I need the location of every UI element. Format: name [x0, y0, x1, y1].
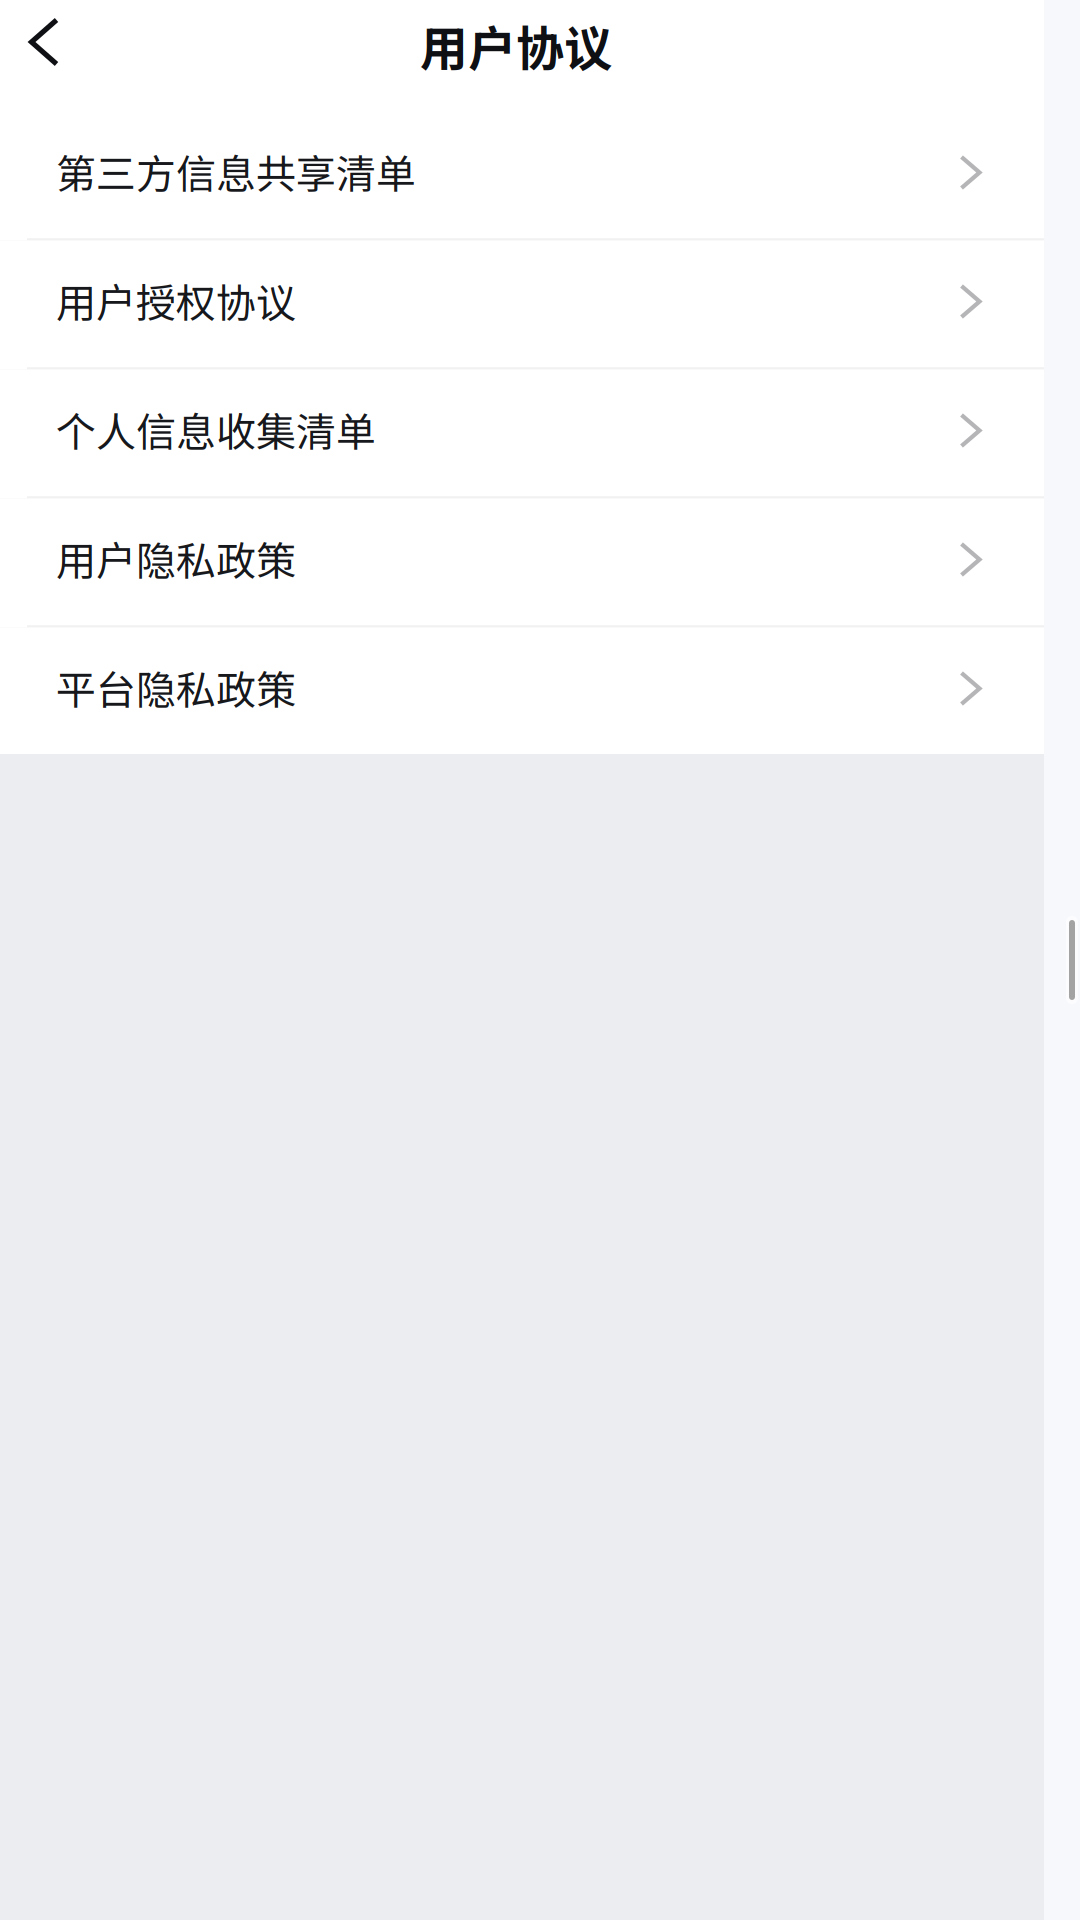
- staticText: 平台隐私政策: [56, 658, 296, 716]
- staticText: 第三方信息共享清单: [56, 142, 416, 200]
- button[interactable]: 第三方信息共享清单: [0, 111, 1044, 240]
- staticText: 用户协议: [420, 10, 612, 80]
- button[interactable]: 用户隐私政策: [0, 498, 1044, 627]
- staticText: 用户授权协议: [56, 271, 296, 329]
- button[interactable]: 用户授权协议: [0, 240, 1044, 369]
- staticText: 用户隐私政策: [56, 529, 296, 587]
- button[interactable]: Back: [1, 0, 87, 85]
- button[interactable]: 个人信息收集清单: [0, 369, 1044, 498]
- button[interactable]: 平台隐私政策: [0, 627, 1044, 754]
- staticText: 个人信息收集清单: [56, 400, 376, 458]
